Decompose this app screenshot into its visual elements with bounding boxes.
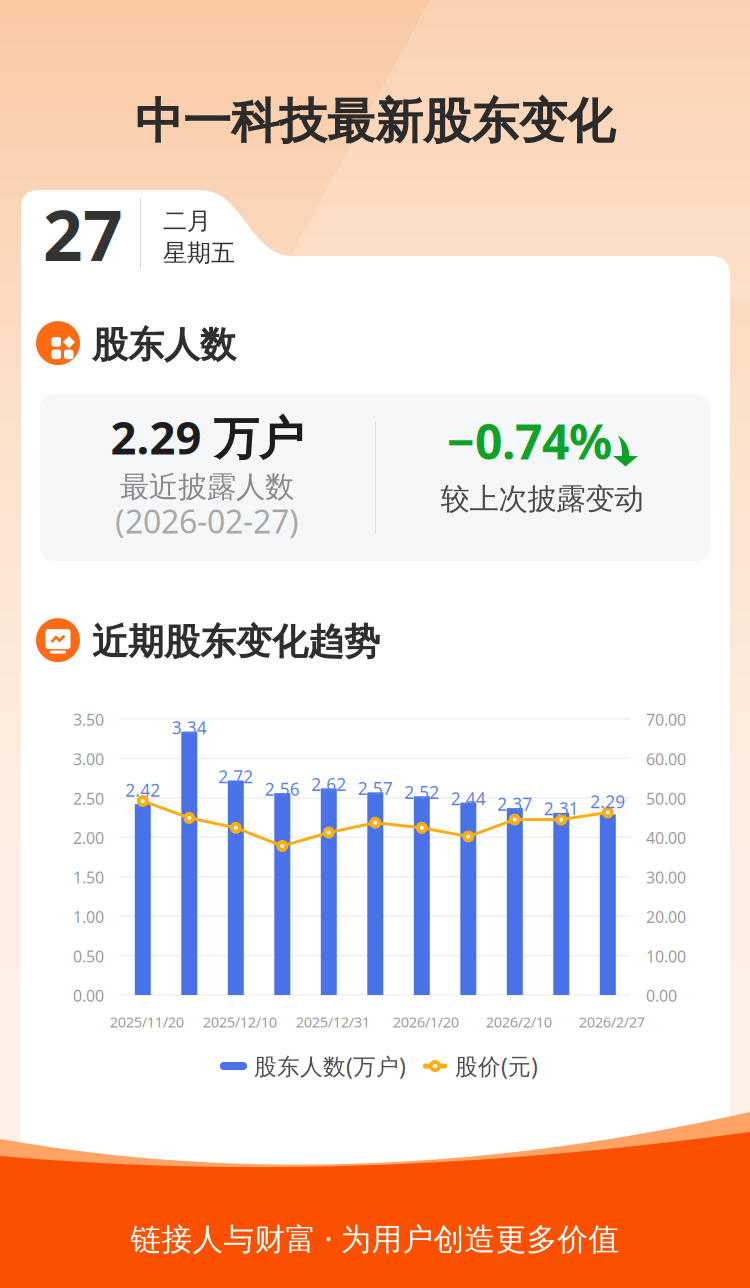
staticText: 2.72 [218, 765, 253, 788]
staticText: 2025/12/31 [296, 1012, 370, 1031]
staticText: 27 [43, 188, 123, 280]
staticText: 10.00 [646, 946, 686, 967]
staticText: −0.74% [447, 409, 612, 473]
staticText: 股价(元) [455, 1051, 538, 1081]
staticText: 70.00 [646, 709, 686, 730]
staticText: 3.50 [73, 709, 104, 730]
staticText: 2.50 [73, 788, 104, 809]
staticText: 股东人数 [92, 323, 236, 367]
staticText: 2026/2/27 [579, 1012, 645, 1031]
staticText: 0.00 [646, 985, 677, 1006]
staticText: 较上次披露变动 [440, 481, 643, 517]
staticText: 2026/2/10 [486, 1012, 552, 1031]
staticText: 1.50 [73, 867, 104, 888]
staticText: 0.00 [73, 985, 104, 1006]
staticText: 2.57 [358, 777, 393, 800]
staticText: 2.37 [497, 793, 532, 816]
staticText: 2.42 [125, 778, 160, 801]
staticText: 2025/12/10 [203, 1012, 277, 1031]
staticText: 2.29 万户 [110, 407, 303, 467]
staticText: 2.62 [311, 773, 346, 796]
staticText: 二月 [163, 206, 211, 236]
staticText: 2.56 [265, 778, 300, 801]
staticText: 1.00 [73, 906, 104, 927]
staticText: 30.00 [646, 867, 686, 888]
staticText: 3.00 [73, 748, 104, 770]
staticText: 中一科技最新股东变化 [135, 92, 615, 151]
staticText: 2026/1/20 [393, 1012, 459, 1031]
staticText: 2.29 [590, 790, 625, 813]
staticText: 3.34 [172, 716, 207, 739]
staticText: 2.31 [544, 797, 579, 820]
staticText: 50.00 [646, 788, 686, 809]
staticText: 60.00 [646, 748, 686, 770]
staticText: 2.52 [404, 781, 439, 804]
staticText: 星期五 [163, 238, 235, 268]
staticText: 2.00 [73, 827, 104, 848]
staticText: 2.44 [451, 787, 486, 810]
staticText: 2025/11/20 [110, 1012, 184, 1031]
staticText: 近期股东变化趋势 [92, 620, 380, 664]
staticText: 最近披露人数 [120, 469, 294, 505]
staticText: (2026-02-27) [115, 500, 299, 542]
staticText: 0.50 [73, 946, 104, 967]
staticText: 链接人与财富 · 为用户创造更多价值 [130, 1218, 619, 1259]
staticText: 40.00 [646, 827, 686, 848]
staticText: 股东人数(万户) [254, 1051, 406, 1081]
staticText: 20.00 [646, 906, 686, 927]
